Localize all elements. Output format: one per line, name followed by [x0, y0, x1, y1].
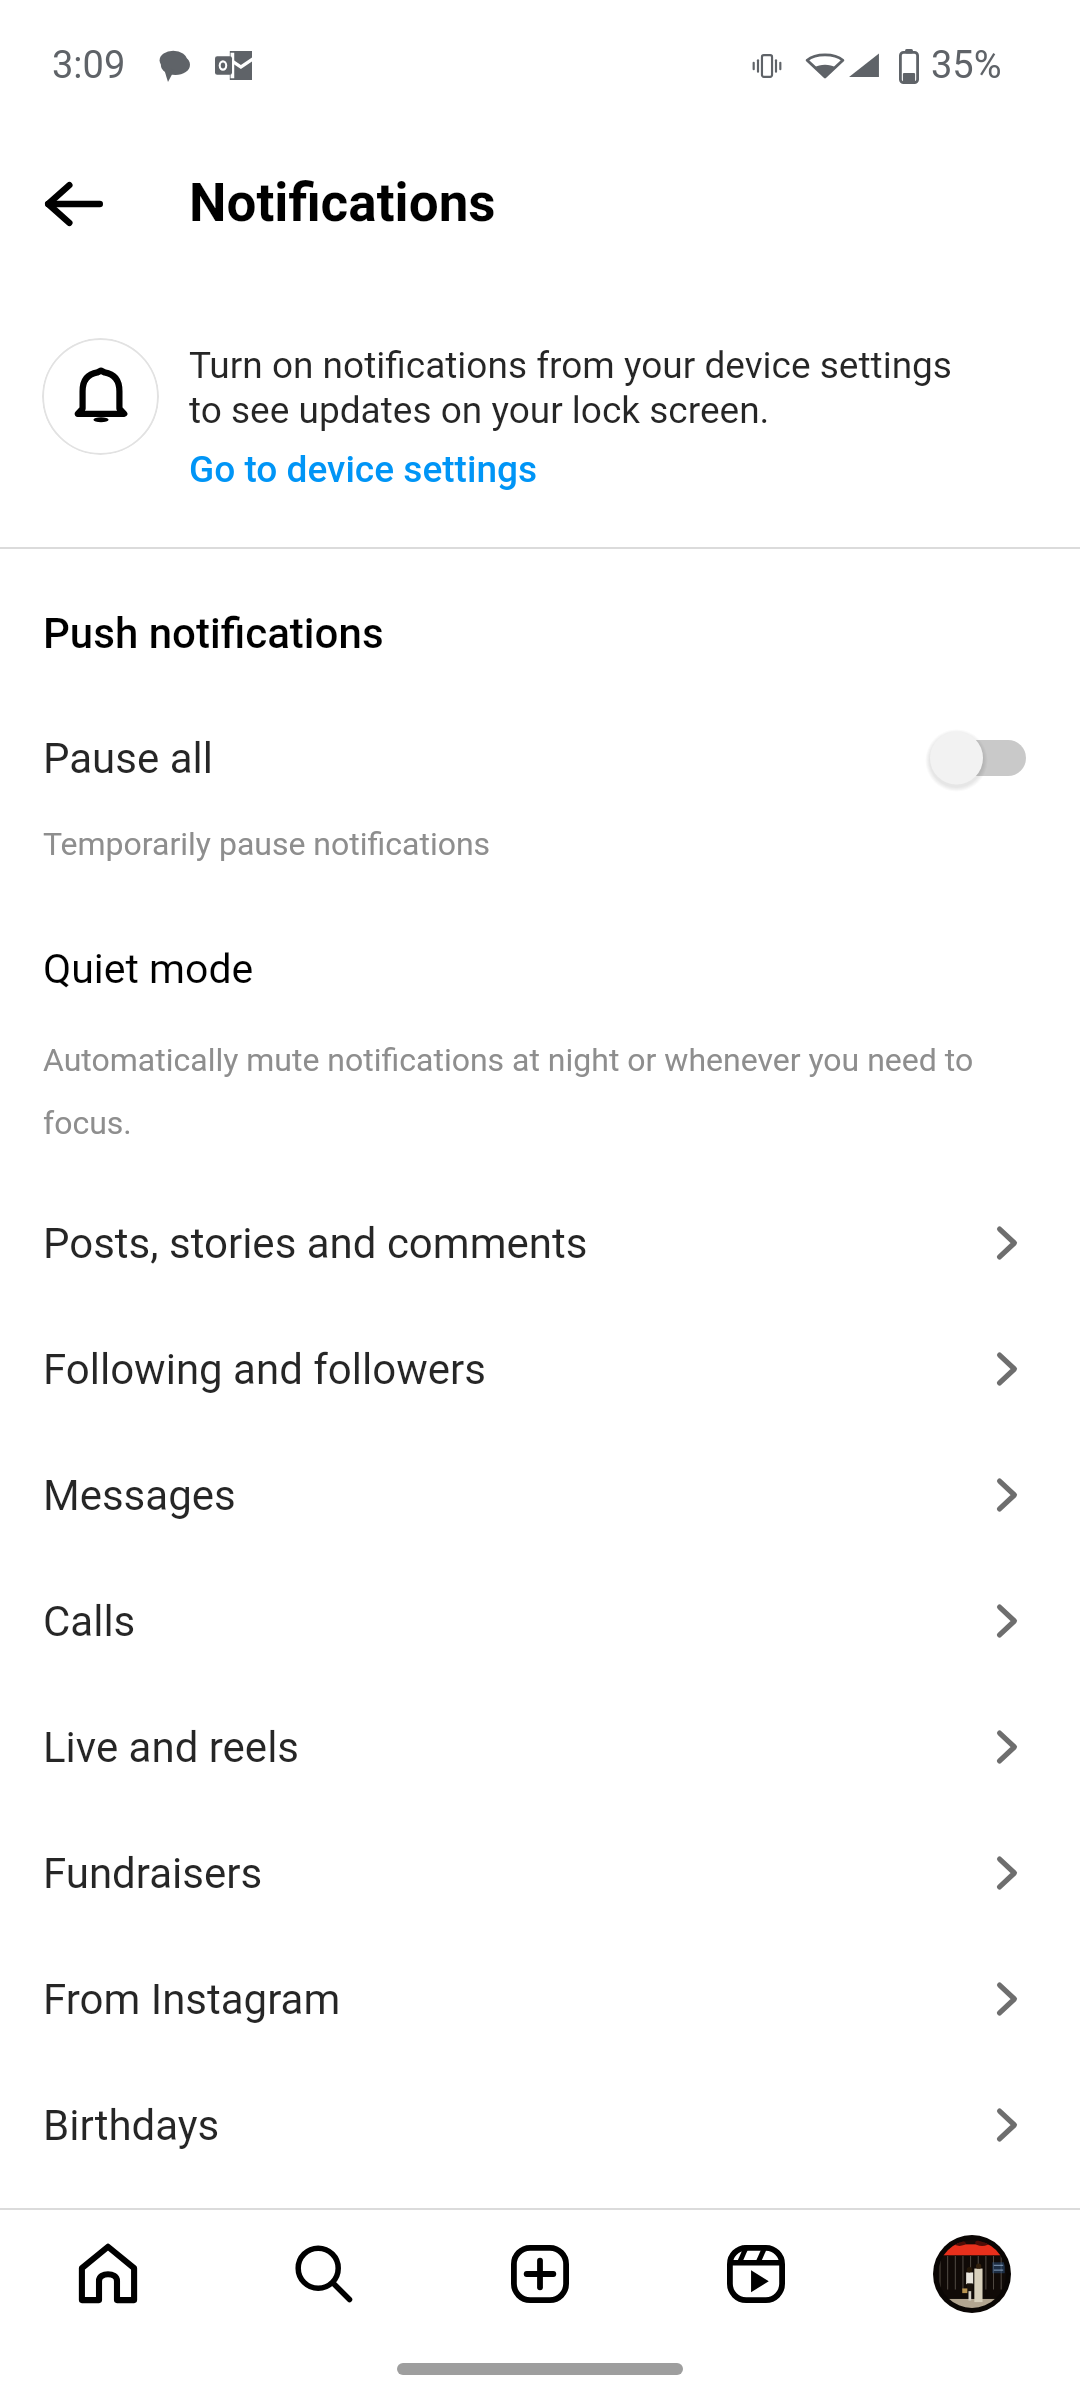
- button[interactable]: Live and reels: [0, 1684, 1080, 1810]
- staticText: Automatically mute notifications at nigh…: [43, 1021, 1003, 1147]
- staticText: 3:09: [52, 43, 126, 88]
- staticText: Go to device settings: [189, 448, 538, 491]
- button[interactable]: Messages: [0, 1432, 1080, 1558]
- staticText: Fundraisers: [43, 1849, 263, 1898]
- staticText: Turn on notifications from your device s…: [189, 342, 989, 432]
- button[interactable]: Posts, stories and comments: [0, 1180, 1080, 1306]
- button[interactable]: Back: [14, 144, 134, 264]
- staticText: Quiet mode: [43, 945, 254, 993]
- staticText: Push notifications: [43, 609, 384, 658]
- button[interactable]: Following and followers: [0, 1306, 1080, 1432]
- button[interactable]: Calls: [0, 1558, 1080, 1684]
- staticText: Notifications: [189, 172, 496, 234]
- staticText: Pause all: [43, 734, 213, 783]
- staticText: Birthdays: [43, 2101, 220, 2150]
- button[interactable]: Go to device settings: [179, 438, 548, 501]
- staticText: Temporarily pause notifications: [43, 825, 491, 863]
- staticText: Posts, stories and comments: [43, 1219, 588, 1268]
- button[interactable]: Home: [0, 2245, 216, 2303]
- button[interactable]: From Instagram: [0, 1936, 1080, 2062]
- button[interactable]: Birthdays: [0, 2062, 1080, 2188]
- staticText: Messages: [43, 1471, 236, 1520]
- button[interactable]: Profile: [864, 2235, 1080, 2313]
- button[interactable]: Create: [432, 2245, 648, 2303]
- staticText: Following and followers: [43, 1345, 486, 1394]
- button[interactable]: Fundraisers: [0, 1810, 1080, 1936]
- staticText: 35%: [931, 43, 1002, 88]
- button[interactable]: [930, 728, 1026, 788]
- button[interactable]: Reels: [648, 2245, 864, 2303]
- staticText: Calls: [43, 1597, 136, 1646]
- staticText: Live and reels: [43, 1723, 300, 1772]
- staticText: From Instagram: [43, 1975, 341, 2024]
- button[interactable]: Pause all: [0, 695, 1080, 821]
- button[interactable]: Search: [216, 2245, 432, 2303]
